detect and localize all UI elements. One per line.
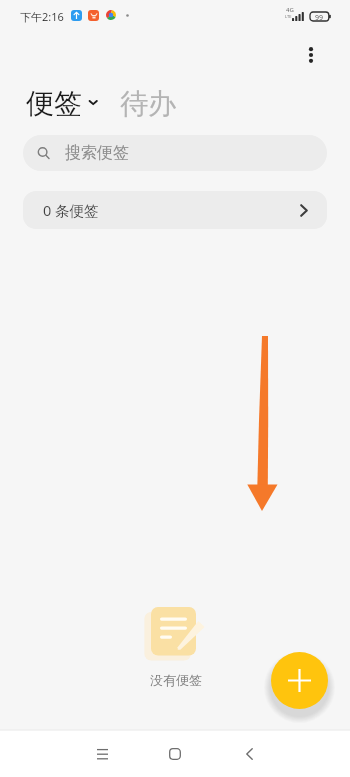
button[interactable]: Recent apps [78,730,126,777]
button[interactable]: Back [225,730,273,777]
staticText: LTE [285,14,292,19]
staticText: 便签 [26,86,82,121]
button[interactable]: Home [151,730,199,777]
button[interactable]: 0 条便签 [23,191,327,229]
button[interactable]: More options [297,41,325,69]
staticText: 没有便签 [150,672,202,688]
staticText: 搜索便签 [65,143,129,163]
button[interactable]: New note [271,652,328,709]
staticText: 下午2:16 [20,9,64,24]
staticText: 99 [315,13,324,23]
button[interactable]: 待办 [120,86,176,121]
button[interactable]: 搜索便签 [23,135,327,171]
staticText: 4G [286,6,294,14]
staticText: 0 条便签 [43,200,99,220]
button[interactable]: 便签 [26,86,102,121]
